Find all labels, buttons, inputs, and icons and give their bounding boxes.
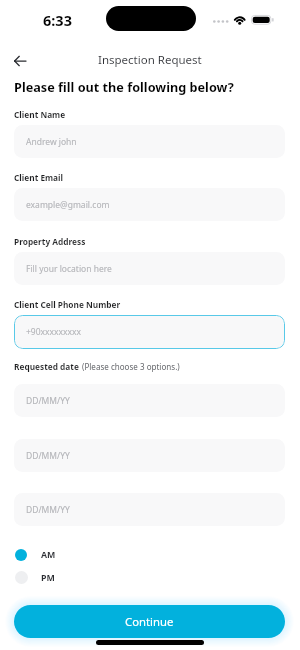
staticText: AM: [41, 549, 56, 561]
staticText: 6:33: [43, 10, 72, 30]
staticText: Fill your location here: [26, 263, 112, 275]
staticText: Continue: [125, 614, 174, 629]
staticText: Property Address: [14, 236, 86, 247]
button[interactable]: +90xxxxxxxxx: [14, 315, 285, 349]
staticText: PM: [41, 572, 55, 584]
button[interactable]: Fill your location here: [14, 252, 285, 285]
button[interactable]: DD/MM/YY: [14, 493, 285, 526]
button[interactable]: Andrew john: [14, 125, 285, 158]
staticText: DD/MM/YY: [26, 504, 70, 516]
button[interactable]: DD/MM/YY: [14, 439, 285, 472]
button[interactable]: AM: [15, 546, 75, 563]
button[interactable]: DD/MM/YY: [14, 384, 285, 417]
button[interactable]: example@gmail.com: [14, 188, 285, 221]
staticText: Requested date: [14, 361, 82, 372]
button[interactable]: Continue: [14, 605, 285, 638]
staticText: (Please choose 3 options.): [82, 361, 180, 372]
staticText: +90xxxxxxxxx: [26, 326, 82, 338]
staticText: Inspection Request: [98, 52, 202, 68]
staticText: Client Email: [14, 172, 64, 183]
staticText: Andrew john: [26, 136, 77, 148]
button[interactable]: PM: [15, 569, 75, 586]
button[interactable]: Back: [7, 48, 33, 74]
staticText: DD/MM/YY: [26, 450, 70, 462]
staticText: Please fill out the following below?: [14, 78, 234, 95]
staticText: DD/MM/YY: [26, 395, 70, 407]
staticText: Client Cell Phone Number: [14, 299, 121, 310]
staticText: example@gmail.com: [26, 199, 110, 211]
staticText: Client Name: [14, 109, 66, 120]
